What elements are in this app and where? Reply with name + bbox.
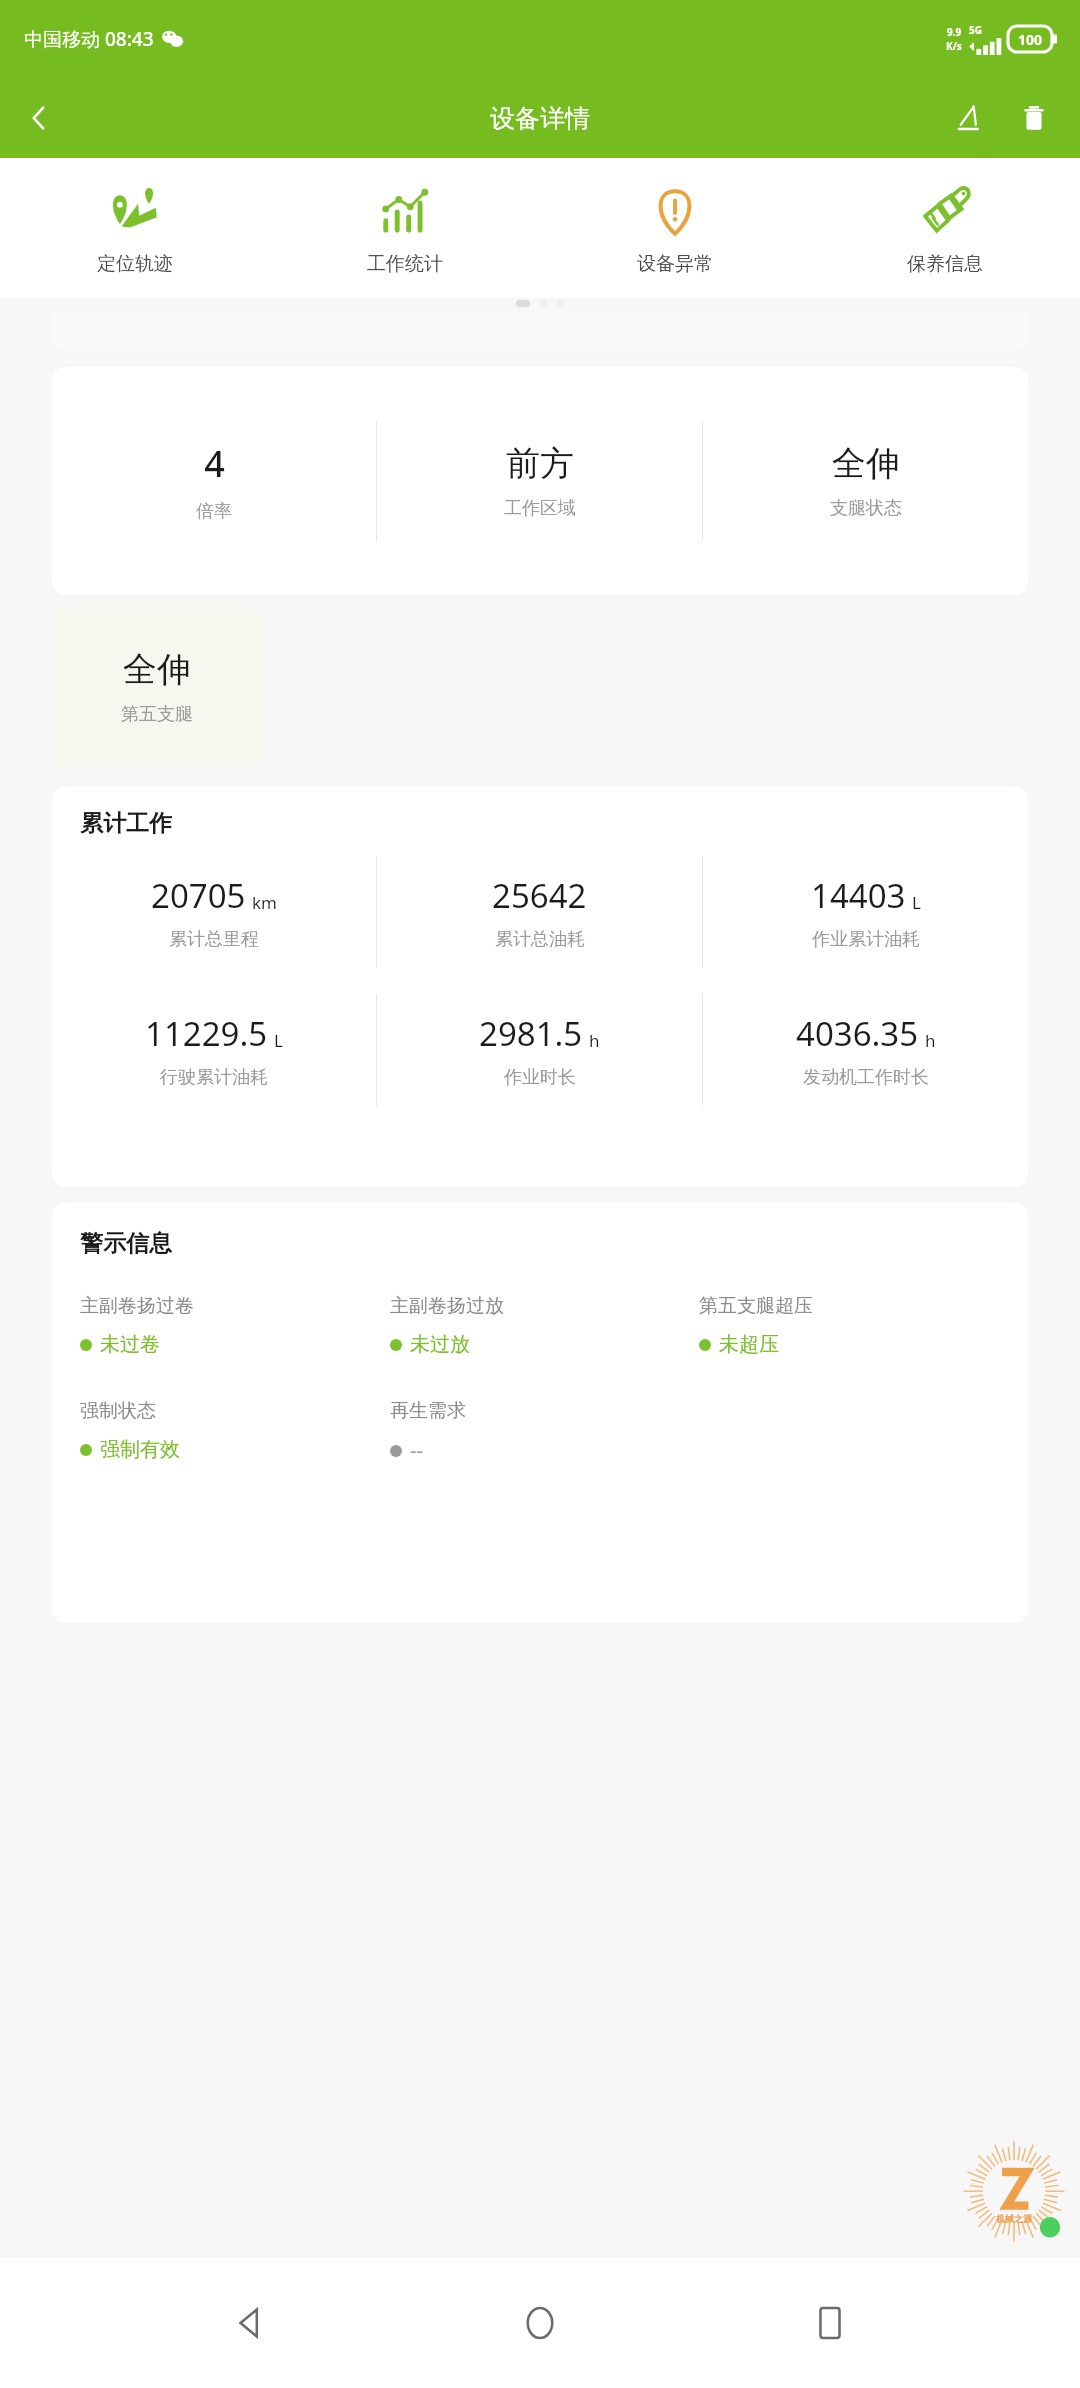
button[interactable]: Back	[10, 89, 68, 147]
staticText: 强制状态	[80, 1399, 156, 1423]
staticText: 倍率	[196, 500, 232, 523]
staticText: 14403	[811, 873, 906, 918]
staticText: 发动机工作时长	[803, 1066, 929, 1089]
staticText: 主副卷扬过放	[390, 1294, 504, 1318]
staticText: 25642	[492, 873, 587, 918]
button[interactable]: 保养信息	[810, 180, 1080, 280]
staticText: 定位轨迹	[97, 252, 173, 276]
staticText: 警示信息	[80, 1229, 172, 1258]
staticText: 前方	[506, 442, 574, 485]
button[interactable]: 累计工作	[52, 787, 1028, 1187]
staticText: 作业累计油耗	[812, 928, 920, 951]
staticText: 100	[1018, 30, 1043, 49]
button[interactable]: Back	[210, 2283, 290, 2363]
staticText: 保养信息	[907, 252, 983, 276]
button[interactable]: 设备异常	[540, 180, 810, 280]
button[interactable]: Edit	[940, 90, 996, 146]
staticText: km	[252, 891, 277, 914]
button[interactable]: 主副卷扬过放	[390, 1294, 699, 1357]
staticText: 全伸	[123, 648, 191, 691]
staticText: 行驶累计油耗	[160, 1066, 268, 1089]
staticText: 工作统计	[367, 252, 443, 276]
staticText: 4036.35	[796, 1011, 919, 1056]
staticText: 作业时长	[504, 1066, 576, 1089]
button[interactable]: 再生需求	[390, 1399, 699, 1464]
staticText: 5G	[969, 23, 982, 37]
staticText: L	[274, 1029, 283, 1052]
staticText: 4	[204, 439, 225, 488]
staticText: 累计总里程	[169, 928, 259, 951]
staticText: 11229.5	[145, 1011, 268, 1056]
staticText: h	[925, 1029, 936, 1052]
staticText: 累计工作	[80, 809, 172, 838]
button[interactable]: 工作统计	[270, 180, 540, 280]
staticText: 9.9	[947, 25, 962, 39]
staticText: 支腿状态	[830, 497, 902, 520]
staticText: h	[589, 1029, 600, 1052]
staticText: --	[410, 1437, 423, 1464]
button[interactable]: Home	[500, 2283, 580, 2363]
button[interactable]: 主副卷扬过卷	[80, 1294, 390, 1357]
button[interactable]: 第五支腿超压	[699, 1294, 1008, 1357]
button[interactable]: 4	[52, 367, 1028, 595]
staticText: 主副卷扬过卷	[80, 1294, 194, 1318]
button[interactable]: 强制状态	[80, 1399, 390, 1462]
staticText: 全伸	[832, 442, 900, 485]
staticText: 工作区域	[504, 497, 576, 520]
button[interactable]: 全伸	[52, 607, 262, 767]
staticText: 设备详情	[490, 103, 590, 134]
button[interactable]: Recent apps	[790, 2283, 870, 2363]
staticText: 20705	[151, 873, 246, 918]
staticText: 强制有效	[100, 1437, 180, 1462]
staticText: 未过卷	[100, 1332, 160, 1357]
staticText: K/s	[946, 39, 962, 53]
staticText: 机械之源	[996, 2213, 1032, 2224]
staticText: 设备异常	[637, 252, 713, 276]
button[interactable]: Delete	[1006, 90, 1062, 146]
staticText: 2981.5	[479, 1011, 583, 1056]
staticText: 累计总油耗	[495, 928, 585, 951]
staticText: 未过放	[410, 1332, 470, 1357]
staticText: 第五支腿	[121, 703, 193, 726]
staticText: 未超压	[719, 1332, 779, 1357]
staticText: 再生需求	[390, 1399, 466, 1423]
staticText: L	[912, 891, 921, 914]
staticText: 第五支腿超压	[699, 1294, 813, 1318]
staticText: 中国移动 08:43	[24, 26, 154, 52]
button[interactable]: 定位轨迹	[0, 180, 270, 280]
